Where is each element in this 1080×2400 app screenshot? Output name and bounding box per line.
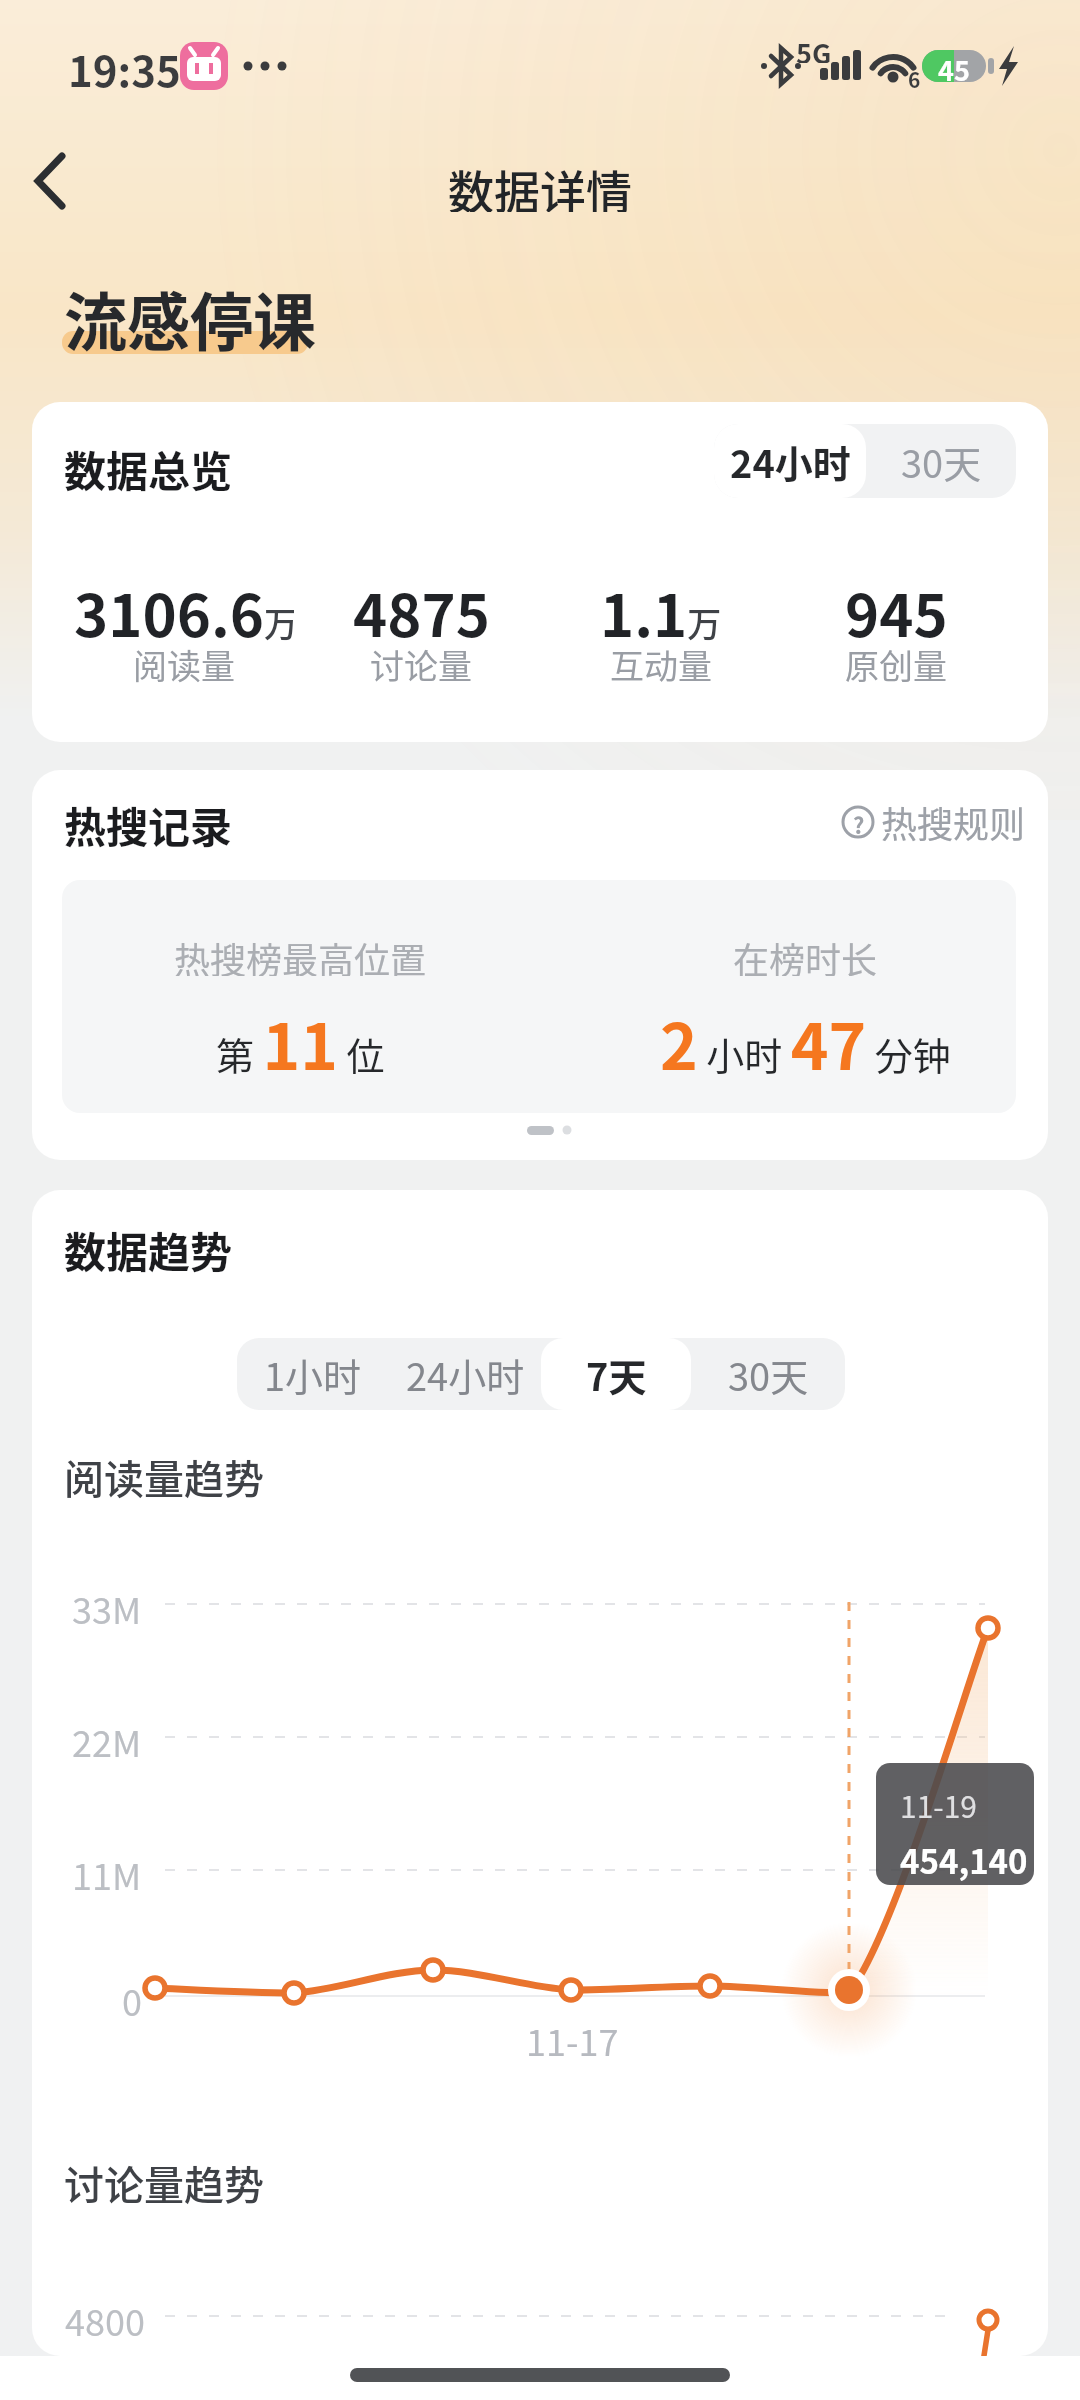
staticText: 数据趋势 <box>64 1219 233 1273</box>
staticText: 45 <box>938 50 970 82</box>
button[interactable]: 1小时 <box>237 1338 389 1410</box>
button[interactable]: 30天 <box>866 424 1016 498</box>
button[interactable]: 30天 <box>691 1338 845 1410</box>
staticText: 2 小时 47 分钟 <box>660 996 951 1086</box>
staticText: 19:35 <box>68 38 181 94</box>
button[interactable] <box>20 146 90 220</box>
staticText: 0 <box>122 1974 142 2018</box>
staticText: 4800 <box>65 2294 145 2338</box>
staticText: 6 <box>908 64 921 88</box>
staticText: 互动量 <box>610 640 712 684</box>
staticText: 1小时 <box>264 1347 362 1402</box>
staticText: 30天 <box>728 1347 809 1402</box>
button[interactable]: 24小时 <box>389 1338 541 1410</box>
staticText: 11-19 <box>900 1783 978 1826</box>
staticText: 3106.6万 <box>74 570 294 644</box>
staticText: 热搜榜最高位置 <box>174 932 427 976</box>
staticText: 第 11 位 <box>216 996 385 1086</box>
button[interactable]: 24小时 <box>714 424 866 498</box>
staticText: 11-17 <box>526 2014 619 2058</box>
staticText: 5G <box>796 33 832 63</box>
staticText: 24小时 <box>730 434 851 489</box>
staticText: 数据详情 <box>448 156 632 212</box>
staticText: 1.1万 <box>600 570 722 644</box>
staticText: 在榜时长 <box>733 932 878 976</box>
staticText: 原创量 <box>845 640 947 684</box>
staticText: 11M <box>72 1848 142 1892</box>
staticText: 24小时 <box>406 1347 525 1402</box>
staticText: 22M <box>72 1715 142 1759</box>
staticText: 讨论量趋势 <box>64 2154 264 2206</box>
staticText: 流感停课 <box>64 272 316 352</box>
staticText: 数据总览 <box>64 438 233 492</box>
staticText: 30天 <box>901 434 982 489</box>
staticText: 4875 <box>353 570 490 644</box>
staticText: 阅读量 <box>133 640 235 684</box>
staticText: 454,140 <box>900 1836 1028 1884</box>
staticText: 热搜记录 <box>64 794 233 848</box>
staticText: ? <box>853 808 865 836</box>
staticText: 7天 <box>586 1347 647 1402</box>
staticText: 讨论量 <box>370 640 472 684</box>
staticText: 热搜规则 <box>881 796 1026 848</box>
button[interactable]: 热搜规则 <box>836 794 1026 850</box>
staticText: 33M <box>72 1582 142 1626</box>
button[interactable]: 7天 <box>541 1338 691 1410</box>
staticText: 阅读量趋势 <box>64 1448 264 1500</box>
staticText: 945 <box>845 570 948 644</box>
